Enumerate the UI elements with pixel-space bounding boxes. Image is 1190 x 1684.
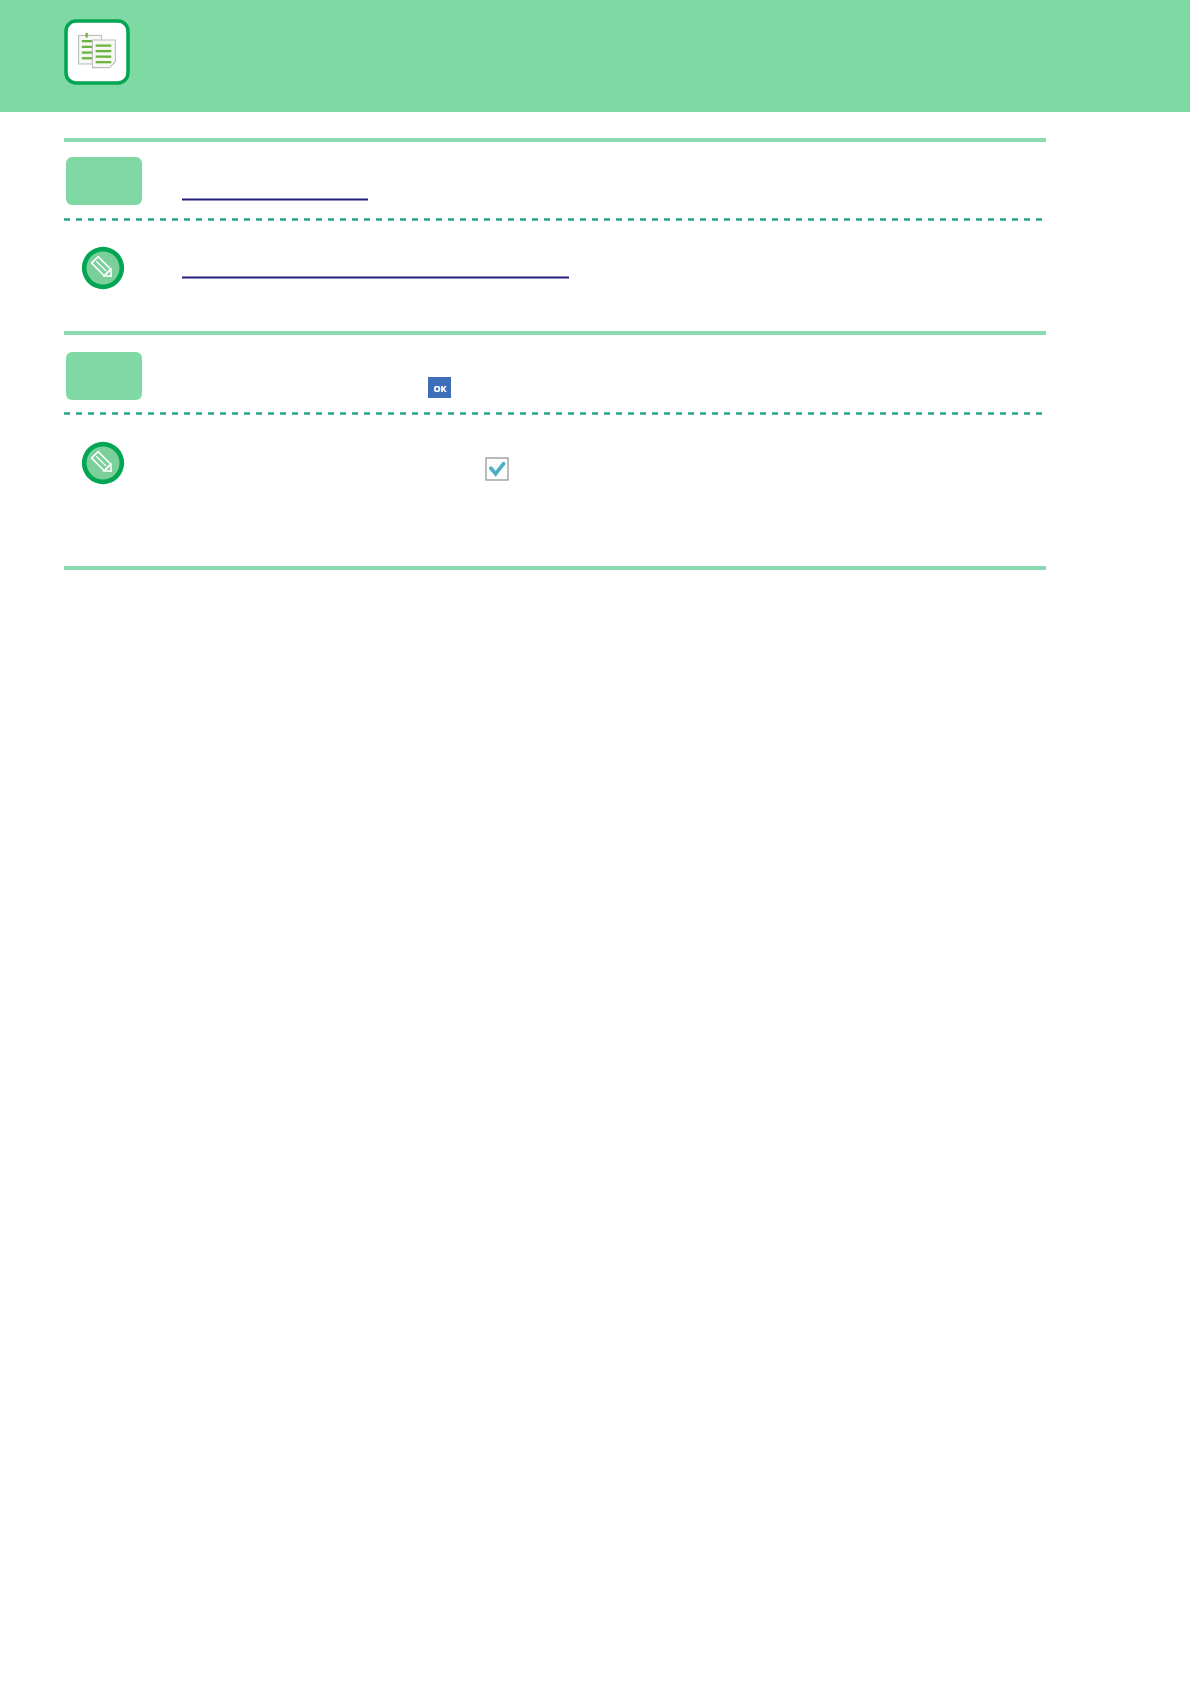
button[interactable]: OK: [428, 377, 451, 398]
button[interactable]: Copy documents: [66, 21, 128, 83]
other: Note: [80, 245, 126, 291]
staticText: OK: [433, 382, 447, 394]
button[interactable]: [66, 157, 142, 205]
other: Checked: [486, 458, 508, 480]
button[interactable]: [66, 352, 142, 400]
other: Note: [80, 440, 126, 486]
